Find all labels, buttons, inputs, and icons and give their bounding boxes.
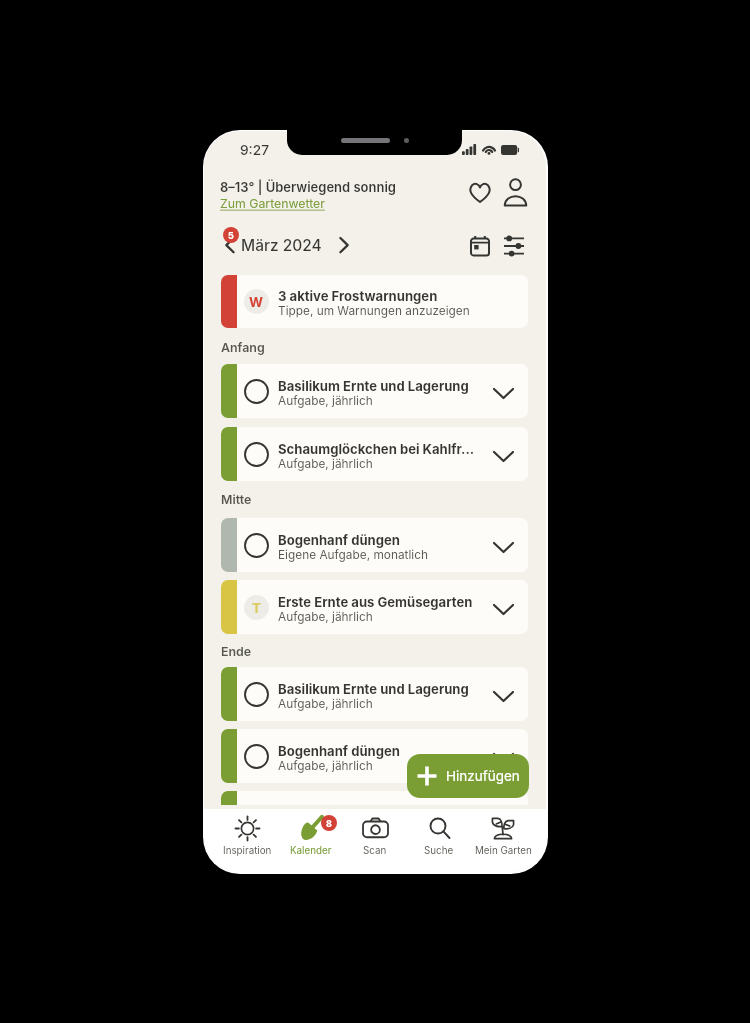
button[interactable]: Basilikum Ernte und Lagerung (221, 364, 528, 418)
button[interactable]: Mein Garten (471, 809, 535, 863)
staticText: Eigene Aufgabe, monatlich (278, 548, 428, 562)
button[interactable]: Inspiration (215, 809, 279, 863)
staticText: 9:27 (240, 142, 270, 159)
staticText: Inspiration (223, 845, 272, 857)
button[interactable]: Zum Gartenwetter (220, 196, 325, 211)
staticText: Aufgabe, jährlich (278, 610, 373, 624)
staticText: 8 (326, 818, 332, 829)
button[interactable]: März 2024 (241, 236, 322, 255)
staticText: Bogenhanf düngen (278, 532, 400, 548)
button[interactable]: Bogenhanf düngen (221, 729, 528, 783)
button[interactable]: Schaumglöckchen bei Kahlfr... (221, 427, 528, 481)
button[interactable]: Hinzufügen (407, 754, 529, 798)
staticText: Aufgabe, jährlich (278, 394, 373, 408)
staticText: Anfang (221, 340, 265, 355)
staticText: 3 aktive Frostwarnungen (278, 288, 438, 304)
staticText: Aufgabe, jährlich (278, 697, 373, 711)
staticText: Ende (221, 644, 252, 659)
staticText: Tippe, um Warnungen anzuzeigen (278, 304, 470, 318)
staticText: Mein Garten (475, 845, 532, 857)
button[interactable]: Favoriten (463, 175, 497, 209)
button[interactable]: Vorheriger Monat (218, 232, 244, 258)
button[interactable]: Scan (343, 809, 407, 863)
staticText: Mitte (221, 492, 252, 507)
staticText: Hinzufügen (446, 768, 520, 784)
staticText: 8–13° | Überwiegend sonnig (220, 179, 396, 195)
staticText: Scan (363, 845, 387, 857)
button[interactable]: Kalenderansicht (466, 232, 494, 260)
button[interactable]: T (221, 580, 528, 634)
button[interactable]: Filter (500, 232, 528, 260)
staticText: Suche (424, 845, 454, 857)
button[interactable]: Suche (407, 809, 471, 863)
staticText: Aufgabe, jährlich (278, 457, 373, 471)
staticText: Aufgabe, jährlich (278, 759, 373, 773)
staticText: W (249, 294, 264, 310)
staticText: Bogenhanf düngen (278, 743, 400, 759)
staticText: Basilikum Ernte und Lagerung (278, 378, 469, 394)
staticText: Erste Ernte aus Gemüsegarten (278, 594, 473, 610)
button[interactable]: Bogenhanf düngen (221, 518, 528, 572)
staticText: 5 (228, 230, 234, 241)
button[interactable]: 8 (279, 809, 343, 863)
button[interactable]: Basilikum Ernte und Lagerung (221, 667, 528, 721)
staticText: Schaumglöckchen bei Kahlfr... (278, 441, 475, 457)
button[interactable]: Nächster Monat (330, 232, 356, 258)
staticText: Basilikum Ernte und Lagerung (278, 681, 469, 697)
staticText: Kalender (290, 845, 332, 857)
staticText: T (252, 600, 262, 616)
button[interactable]: W (221, 275, 528, 328)
button[interactable]: Profil (498, 175, 532, 209)
